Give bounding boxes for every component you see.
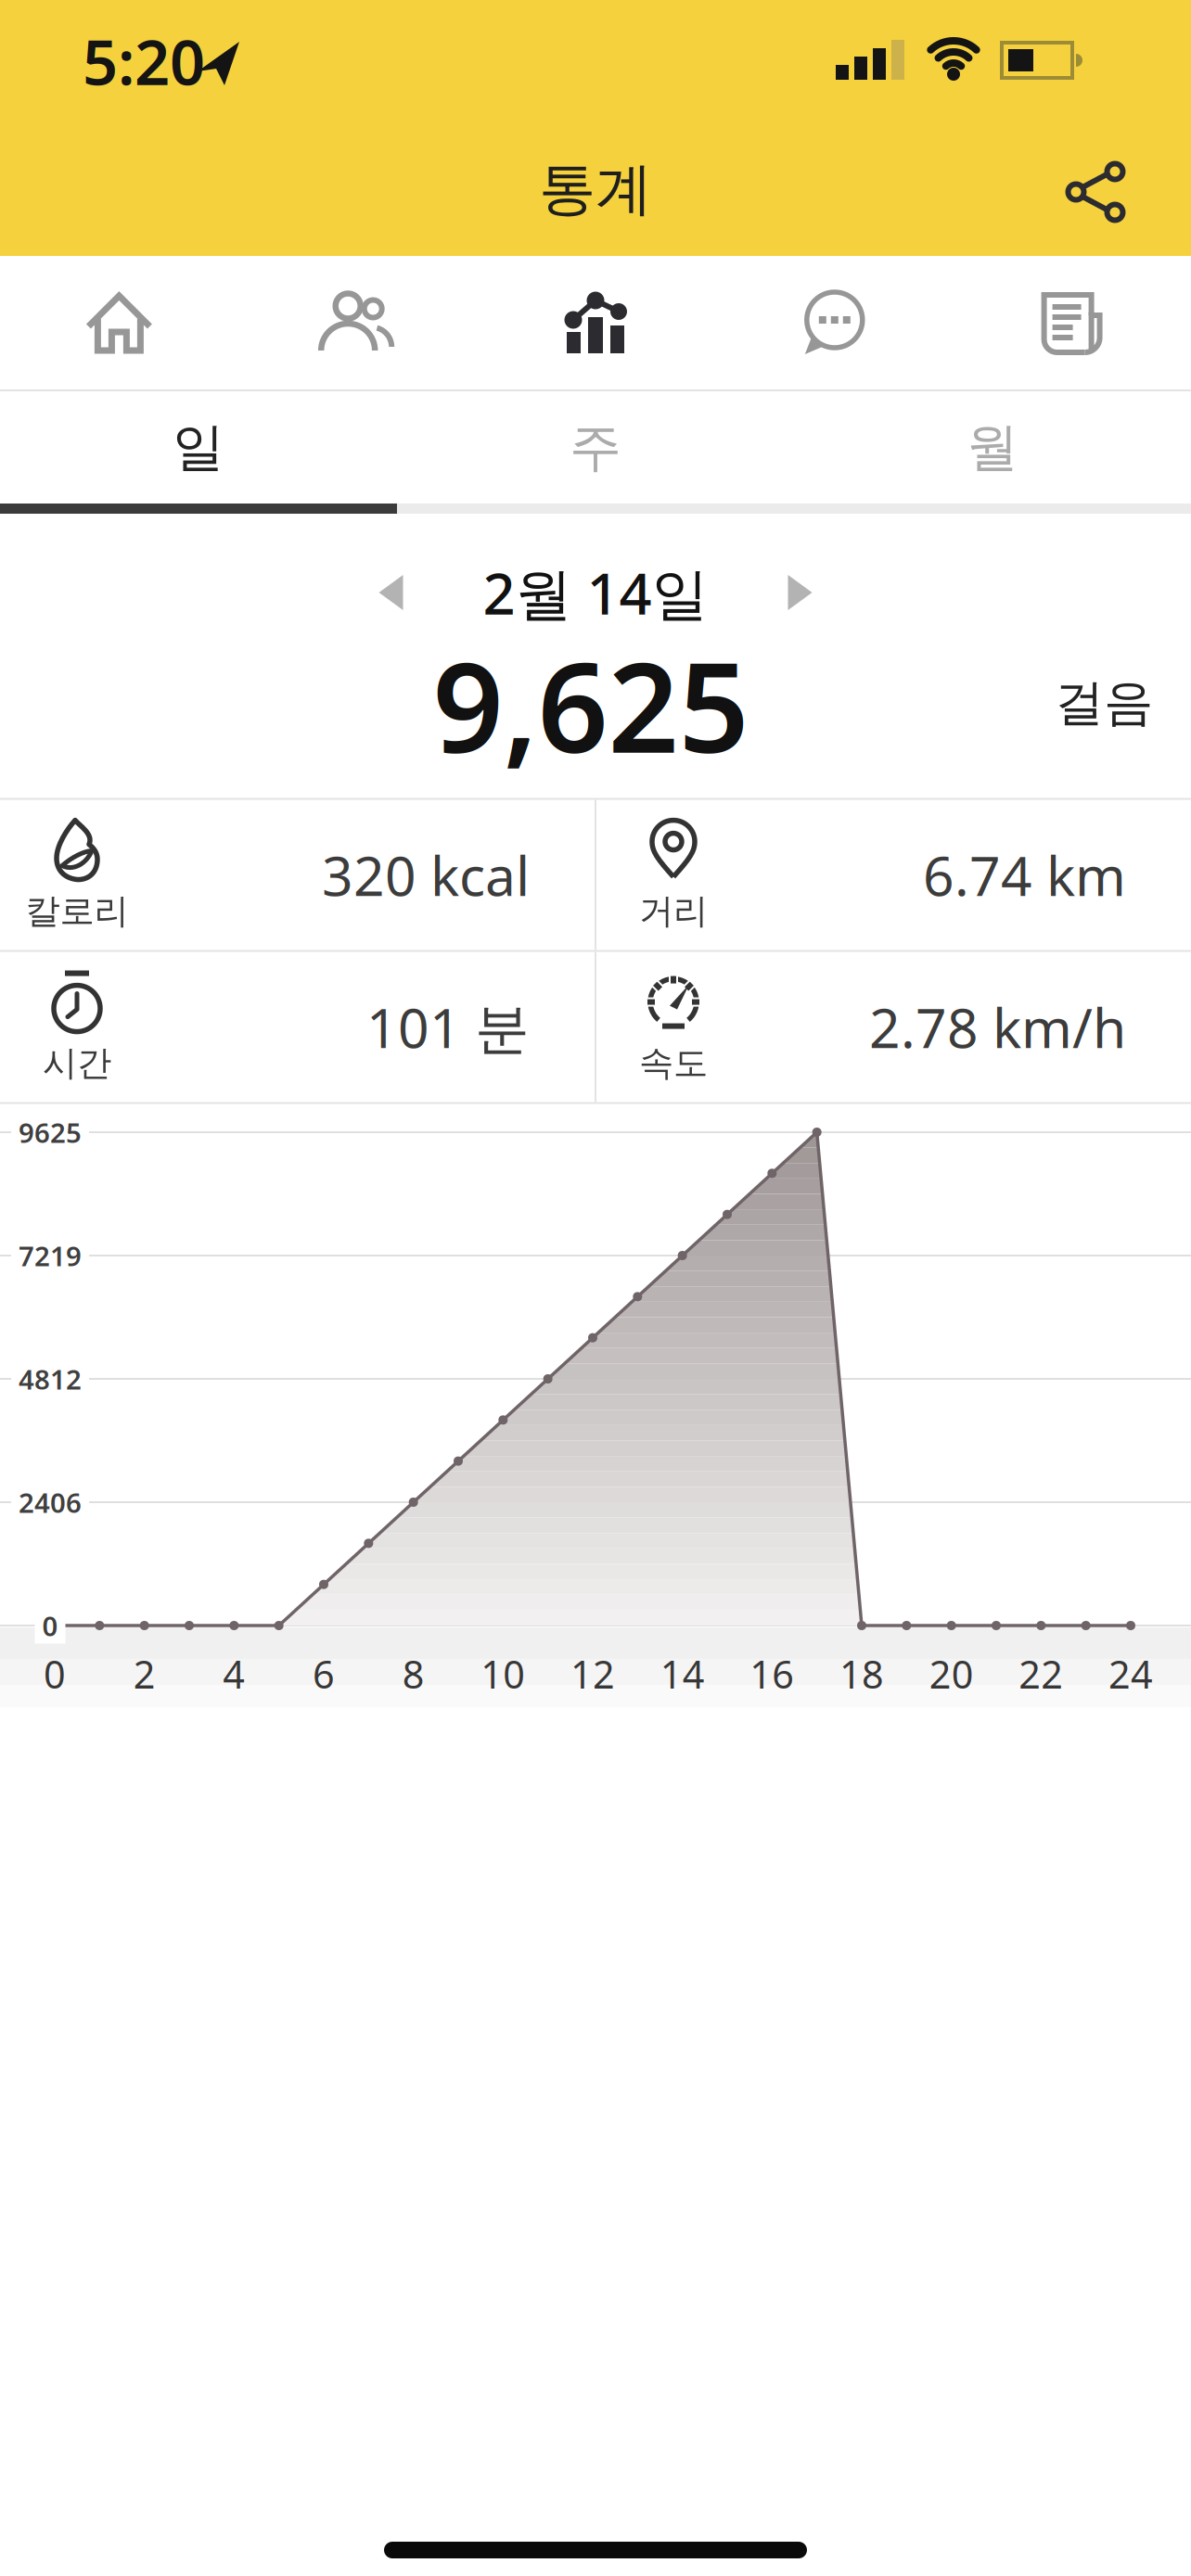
staticText: 9,625 xyxy=(433,623,749,787)
staticText: 주 xyxy=(570,416,621,479)
staticText: 14 xyxy=(660,1648,705,1699)
staticText: 4812 xyxy=(19,1361,82,1397)
staticText: 12 xyxy=(570,1648,615,1699)
button[interactable]: Share xyxy=(1066,162,1125,222)
staticText: 22 xyxy=(1019,1648,1063,1699)
staticText: 20 xyxy=(929,1648,974,1699)
button[interactable]: Next day xyxy=(788,575,812,610)
staticText: 10 xyxy=(481,1648,525,1699)
staticText: 칼로리 xyxy=(26,890,128,932)
button[interactable]: Statistics xyxy=(476,256,715,389)
staticText: 7219 xyxy=(19,1237,82,1274)
staticText: 18 xyxy=(839,1648,884,1699)
button[interactable]: Home xyxy=(0,256,238,389)
staticText: 2.78 km/h xyxy=(869,991,1126,1063)
staticText: 일 xyxy=(173,416,224,479)
staticText: 6 xyxy=(313,1648,335,1699)
staticText: 속도 xyxy=(639,1042,708,1084)
staticText: 거리 xyxy=(639,890,708,932)
staticText: 0 xyxy=(42,1607,58,1644)
staticText: 걸음 xyxy=(1055,672,1153,733)
staticText: 320 kcal xyxy=(322,839,530,911)
staticText: 통계 xyxy=(539,154,652,224)
staticText: 9625 xyxy=(19,1114,82,1150)
button[interactable]: 일 xyxy=(0,391,397,504)
staticText: 24 xyxy=(1108,1648,1153,1699)
button[interactable]: Chat xyxy=(715,256,953,389)
staticText: 0 xyxy=(44,1648,66,1699)
staticText: 2406 xyxy=(19,1484,82,1520)
button[interactable]: 월 xyxy=(794,391,1191,504)
staticText: 16 xyxy=(750,1648,794,1699)
button[interactable]: Previous day xyxy=(379,575,403,610)
staticText: 월 xyxy=(967,416,1018,479)
staticText: 5:20 xyxy=(83,20,205,102)
staticText: 2 xyxy=(133,1648,156,1699)
button[interactable]: News xyxy=(953,256,1191,389)
staticText: 8 xyxy=(402,1648,425,1699)
staticText: 6.74 km xyxy=(923,839,1126,911)
staticText: 2월 14일 xyxy=(483,555,708,630)
staticText: 시간 xyxy=(43,1042,111,1084)
button[interactable]: 주 xyxy=(397,391,794,504)
staticText: 101 분 xyxy=(366,991,530,1063)
staticText: 4 xyxy=(223,1648,245,1699)
button[interactable]: Friends xyxy=(238,256,476,389)
